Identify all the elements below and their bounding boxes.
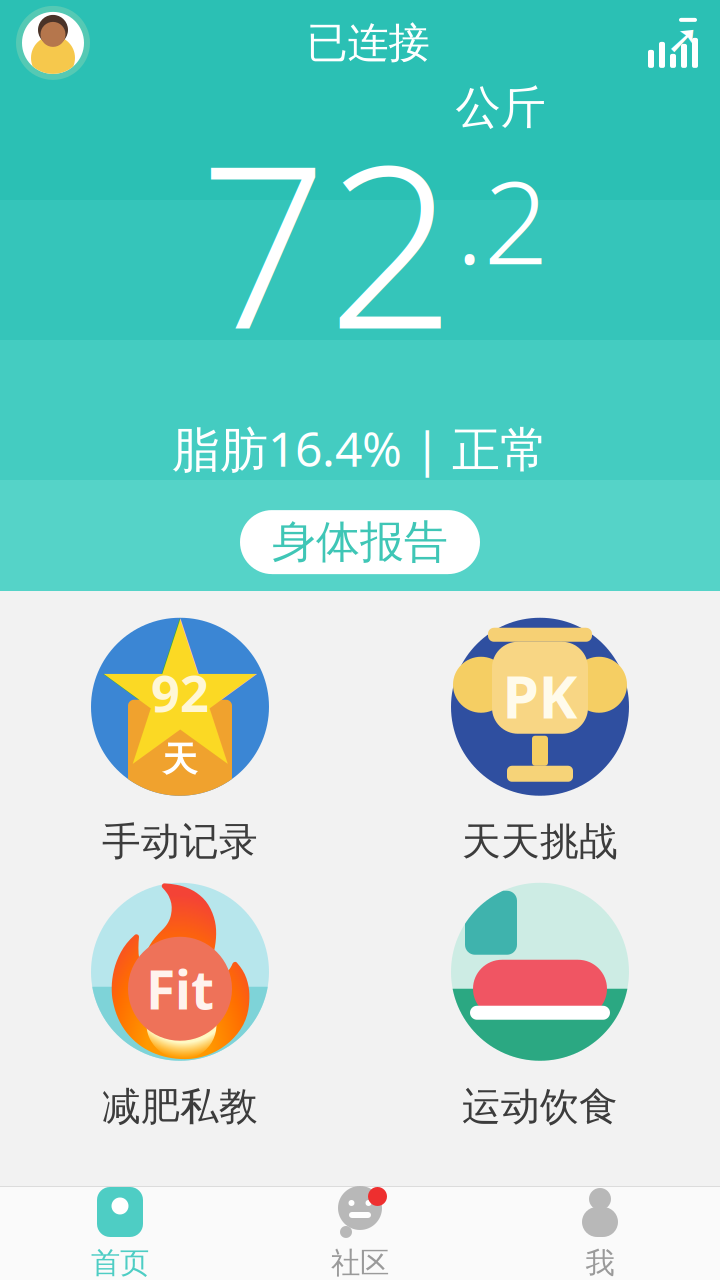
- staticText: 减肥私教: [102, 1083, 258, 1130]
- staticText: 身体报告: [272, 515, 448, 569]
- staticText: 已连接: [306, 17, 429, 68]
- button[interactable]: 社区: [240, 1186, 480, 1280]
- button[interactable]: 运动饮食: [360, 874, 720, 1139]
- staticText: 运动饮食: [462, 1083, 618, 1130]
- staticText: 🔥: [80, 880, 279, 1063]
- staticText: 我: [585, 1245, 614, 1280]
- staticText: 手动记录: [102, 818, 258, 865]
- staticText: 天天挑战: [462, 818, 618, 865]
- staticText: .2: [455, 144, 548, 296]
- button[interactable]: Trends: [646, 17, 720, 69]
- staticText: 社区: [331, 1245, 389, 1280]
- staticText: ➚: [666, 16, 700, 62]
- staticText: Fit: [146, 953, 214, 1024]
- staticText: PK: [502, 657, 577, 735]
- staticText: 首页: [91, 1245, 149, 1280]
- staticText: 公斤: [455, 80, 545, 136]
- button[interactable]: 首页: [0, 1186, 240, 1280]
- button[interactable]: 身体报告: [240, 510, 480, 574]
- staticText: 92: [151, 659, 209, 726]
- button[interactable]: 🔥: [0, 874, 360, 1139]
- staticText: ★: [90, 580, 269, 807]
- staticText: 脂肪16.4% | 正常: [172, 416, 548, 480]
- staticText: 72: [199, 93, 455, 390]
- button[interactable]: 我: [480, 1186, 720, 1280]
- button[interactable]: ★: [0, 609, 360, 874]
- staticText: 天: [162, 738, 197, 781]
- button[interactable]: PK: [360, 609, 720, 874]
- button[interactable]: Profile: [0, 6, 90, 80]
